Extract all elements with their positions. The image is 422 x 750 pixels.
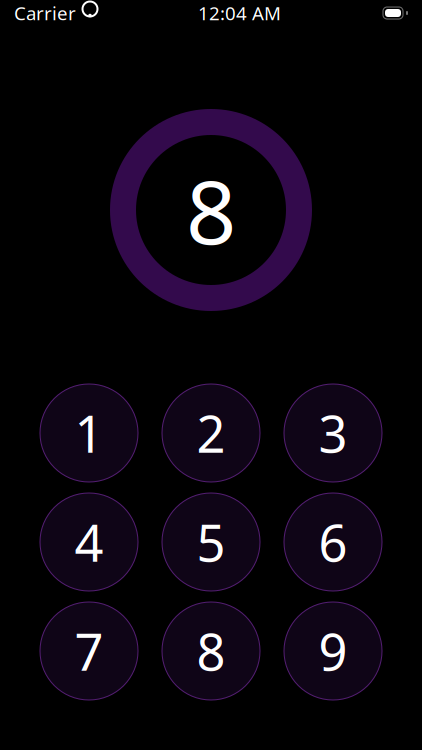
button[interactable]: 7	[40, 602, 138, 700]
button[interactable]: 1	[40, 384, 138, 482]
button[interactable]: 5	[162, 493, 260, 591]
staticText: 12:04 AM	[198, 1, 281, 25]
staticText: 8	[186, 152, 236, 268]
staticText: 9	[318, 617, 347, 685]
staticText: 3	[318, 399, 347, 467]
button[interactable]: 9	[284, 602, 382, 700]
staticText: 6	[318, 508, 347, 576]
staticText: 1	[74, 399, 103, 467]
staticText: Carrier	[14, 1, 76, 25]
staticText: 7	[74, 617, 103, 685]
button[interactable]: 3	[284, 384, 382, 482]
button[interactable]: 2	[162, 384, 260, 482]
staticText: 5	[196, 508, 225, 576]
button[interactable]: 6	[284, 493, 382, 591]
button[interactable]: 4	[40, 493, 138, 591]
staticText: 8	[196, 617, 225, 685]
button[interactable]: 8	[162, 602, 260, 700]
staticText: 4	[74, 508, 103, 576]
staticText: 2	[196, 399, 225, 467]
